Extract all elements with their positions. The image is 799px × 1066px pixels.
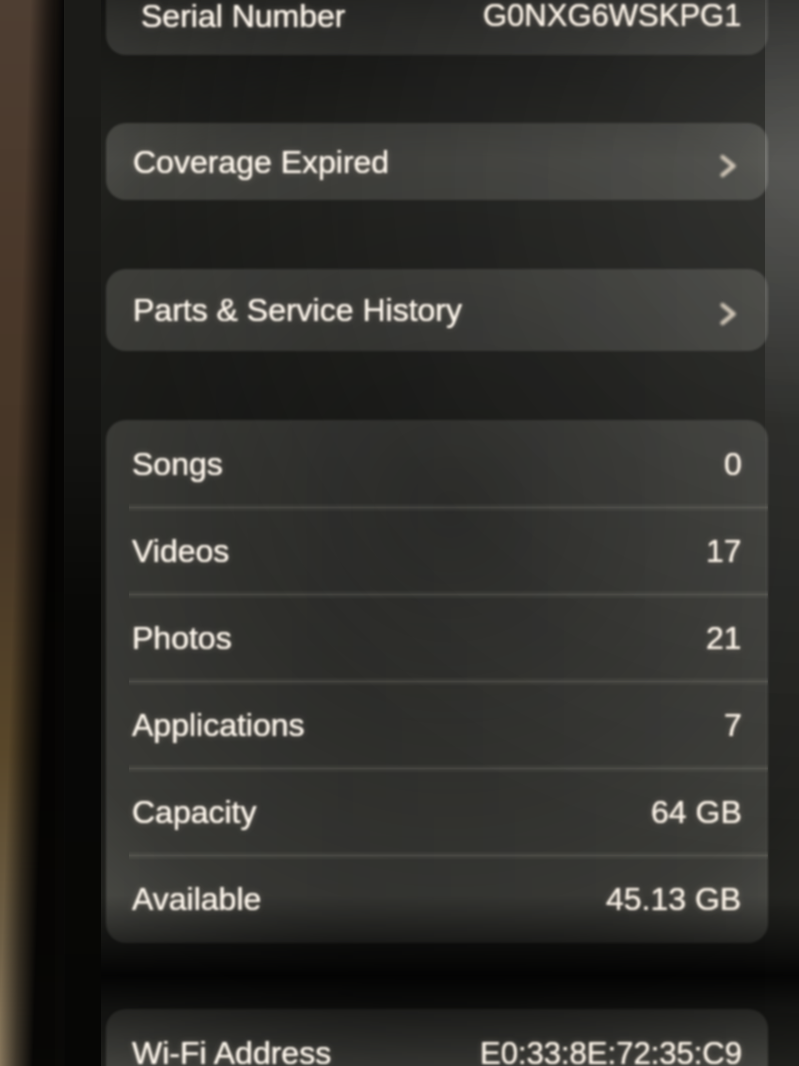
staticText: 0: [724, 446, 742, 482]
staticText: Serial Number: [141, 0, 346, 34]
staticText: G0NXG6WSKPG1: [483, 0, 742, 33]
staticText: Coverage Expired: [133, 144, 390, 180]
staticText: Serial Number: [141, 0, 346, 34]
staticText: Available: [132, 881, 262, 917]
staticText: 45.13 GB: [606, 881, 742, 917]
button[interactable]: Wi-Fi Address: [106, 1009, 768, 1066]
staticText: 17: [706, 533, 742, 569]
staticText: 17: [706, 533, 742, 569]
staticText: E0:33:8E:72:35:C9: [480, 1036, 742, 1066]
button[interactable]: Applications: [106, 681, 768, 768]
button[interactable]: Songs: [106, 420, 768, 507]
staticText: 7: [724, 707, 742, 743]
staticText: Parts & Service History: [133, 292, 462, 328]
staticText: Coverage Expired: [133, 144, 390, 180]
staticText: Wi-Fi Address: [132, 1035, 332, 1066]
staticText: Available: [132, 881, 262, 917]
button[interactable]: Coverage Expired: [106, 123, 768, 200]
staticText: 0: [724, 446, 742, 482]
staticText: 21: [706, 620, 742, 656]
staticText: 7: [724, 707, 742, 743]
other: Coverage Expired: [720, 154, 736, 178]
staticText: G0NXG6WSKPG1: [483, 0, 742, 33]
staticText: Photos: [132, 620, 232, 656]
other: Parts & Service History: [720, 302, 736, 326]
staticText: Songs: [132, 446, 223, 482]
staticText: Videos: [132, 533, 230, 569]
button[interactable]: Photos: [106, 594, 768, 681]
button[interactable]: Videos: [106, 507, 768, 594]
button[interactable]: Parts & Service History: [106, 269, 768, 351]
staticText: Photos: [132, 620, 232, 656]
button[interactable]: Available: [106, 855, 768, 942]
staticText: 21: [706, 620, 742, 656]
staticText: Parts & Service History: [133, 292, 462, 328]
staticText: Capacity: [132, 794, 257, 830]
staticText: Videos: [132, 533, 230, 569]
staticText: 45.13 GB: [606, 881, 742, 917]
staticText: 64 GB: [651, 794, 742, 830]
staticText: 64 GB: [651, 794, 742, 830]
button[interactable]: Serial Number: [106, 0, 768, 55]
button[interactable]: Capacity: [106, 768, 768, 855]
staticText: Wi-Fi Address: [132, 1035, 332, 1066]
staticText: Applications: [132, 707, 305, 743]
staticText: Songs: [132, 446, 223, 482]
staticText: E0:33:8E:72:35:C9: [480, 1036, 742, 1066]
staticText: Applications: [132, 707, 305, 743]
staticText: Capacity: [132, 794, 257, 830]
